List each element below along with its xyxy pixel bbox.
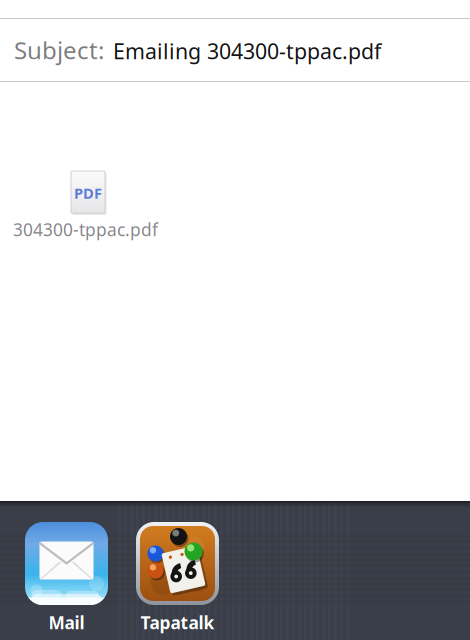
staticText: Subject: <box>14 34 104 66</box>
staticText: Tapatalk <box>140 611 214 634</box>
staticText: 304300-tppac.pdf <box>13 218 158 241</box>
button[interactable]: Mail <box>19 522 114 634</box>
staticText: Mail <box>48 611 84 634</box>
staticText: Emailing 304300-tppac.pdf <box>113 37 381 65</box>
staticText: PDF <box>74 183 102 203</box>
button[interactable]: Tapatalk <box>130 522 225 634</box>
button[interactable]: PDF <box>0 168 158 241</box>
